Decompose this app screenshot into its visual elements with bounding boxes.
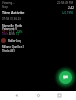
staticText: Stop: [2, 5, 8, 9]
staticText: Milano Quello s1: [2, 45, 24, 49]
staticText: Activ: [8, 32, 16, 36]
button[interactable]: New message: [59, 71, 72, 84]
staticText: (+0.19%): [62, 11, 74, 15]
staticText: Titre Activite: [2, 10, 25, 15]
staticText: Roller Ioq: [8, 39, 21, 43]
staticText: -18%: [16, 30, 23, 34]
staticText: 2.42: [68, 6, 74, 10]
staticText: Titolo 461: [2, 49, 15, 53]
staticText: Paiement V: [2, 27, 17, 31]
staticText: 79.7: [2, 30, 8, 34]
button[interactable]: Recents: [55, 91, 64, 100]
staticText: 22:58:49 PM: [57, 1, 74, 5]
button[interactable]: Back: [12, 91, 21, 100]
staticText: Viewing…: [2, 1, 15, 5]
staticText: Titre: [2, 32, 8, 36]
staticText: Marseille Platfo: [2, 24, 23, 28]
staticText: 12: [16, 32, 20, 36]
button[interactable]: Home: [34, 91, 43, 100]
staticText: 12.2: [8, 30, 16, 34]
staticText: 07:58 31.36.23: [2, 17, 21, 21]
